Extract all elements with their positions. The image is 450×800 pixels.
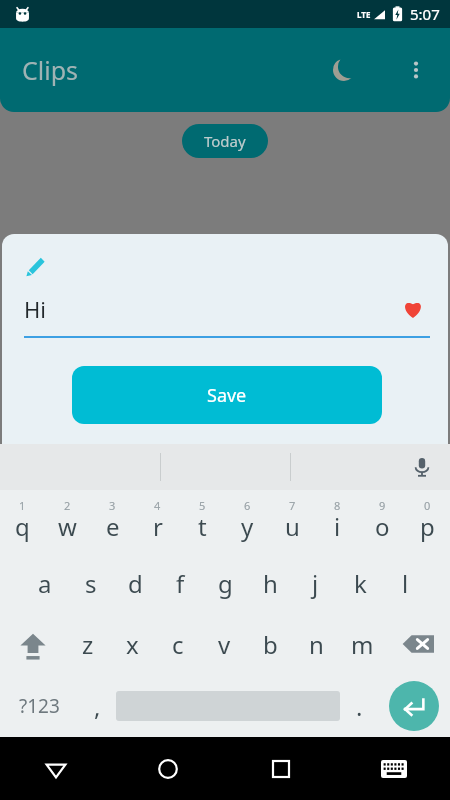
staticText: 7: [289, 498, 296, 513]
button[interactable]: Backspace: [385, 613, 450, 675]
button[interactable]: 2: [45, 490, 90, 553]
staticText: e: [106, 510, 120, 543]
staticText: 4: [154, 498, 161, 513]
button[interactable]: v: [201, 613, 247, 675]
button[interactable]: z: [65, 613, 110, 675]
button[interactable]: g: [203, 553, 248, 613]
button[interactable]: ?123: [0, 675, 78, 737]
staticText: w: [58, 510, 77, 543]
staticText: y: [241, 510, 254, 543]
staticText: Hi: [24, 294, 396, 324]
staticText: q: [15, 510, 30, 543]
button[interactable]: 5: [180, 490, 225, 553]
staticText: Today: [204, 131, 246, 151]
button[interactable]: d: [113, 553, 158, 613]
staticText: n: [309, 628, 324, 661]
staticText: p: [420, 510, 435, 543]
button[interactable]: Enter: [389, 681, 439, 731]
button[interactable]: Voice input: [404, 449, 440, 485]
staticText: o: [375, 510, 390, 543]
staticText: Clips: [22, 53, 79, 87]
button[interactable]: k: [338, 553, 383, 613]
staticText: .: [356, 690, 363, 723]
button[interactable]: Recents: [224, 737, 337, 800]
staticText: r: [153, 510, 163, 543]
staticText: 8: [334, 498, 341, 513]
staticText: u: [285, 510, 300, 543]
staticText: v: [218, 628, 231, 661]
staticText: 1: [19, 498, 26, 513]
button[interactable]: h: [248, 553, 293, 613]
button[interactable]: Back: [0, 737, 112, 800]
button[interactable]: 1: [0, 490, 45, 553]
staticText: 5:07: [410, 4, 440, 24]
button[interactable]: 6: [225, 490, 270, 553]
button[interactable]: Today: [182, 124, 268, 158]
button[interactable]: Home: [112, 737, 224, 800]
staticText: 0: [424, 498, 431, 513]
button[interactable]: Switch keyboard: [337, 737, 450, 800]
staticText: 6: [244, 498, 251, 513]
staticText: 3: [109, 498, 116, 513]
button[interactable]: 4: [135, 490, 180, 553]
other: Edit: [24, 254, 48, 278]
button[interactable]: 7: [270, 490, 315, 553]
button[interactable]: 0: [405, 490, 450, 553]
staticText: j: [312, 567, 319, 600]
staticText: l: [402, 567, 409, 600]
staticText: x: [126, 628, 139, 661]
staticText: g: [218, 567, 233, 600]
button[interactable]: ,: [78, 675, 116, 737]
button[interactable]: s: [68, 553, 113, 613]
staticText: 9: [379, 498, 386, 513]
button[interactable]: 3: [90, 490, 135, 553]
staticText: k: [354, 567, 367, 600]
button[interactable]: Shift: [0, 613, 65, 675]
button[interactable]: x: [110, 613, 155, 675]
staticText: Save: [207, 383, 247, 408]
staticText: f: [176, 567, 185, 600]
staticText: 2: [64, 498, 71, 513]
staticText: ,: [94, 690, 101, 723]
button[interactable]: n: [293, 613, 339, 675]
staticText: i: [334, 510, 341, 543]
staticText: s: [85, 567, 97, 600]
button[interactable]: Favorite: [396, 292, 430, 326]
staticText: t: [198, 510, 207, 543]
button[interactable]: a: [22, 553, 68, 613]
staticText: b: [263, 628, 278, 661]
staticText: d: [128, 567, 143, 600]
button[interactable]: 9: [360, 490, 405, 553]
staticText: a: [38, 567, 52, 600]
button[interactable]: .: [340, 675, 378, 737]
button[interactable]: Night mode: [322, 48, 366, 92]
staticText: z: [82, 628, 94, 661]
staticText: h: [263, 567, 278, 600]
button[interactable]: Save: [72, 366, 382, 424]
staticText: c: [172, 628, 184, 661]
staticText: m: [351, 628, 374, 661]
staticText: LTE: [357, 9, 371, 20]
button[interactable]: b: [247, 613, 293, 675]
staticText: ?123: [19, 693, 60, 719]
button[interactable]: More options: [394, 48, 438, 92]
button[interactable]: 8: [315, 490, 360, 553]
button[interactable]: f: [158, 553, 203, 613]
button[interactable]: j: [293, 553, 338, 613]
button[interactable]: m: [339, 613, 385, 675]
button[interactable]: l: [383, 553, 428, 613]
staticText: 5: [199, 498, 206, 513]
button[interactable]: c: [155, 613, 201, 675]
